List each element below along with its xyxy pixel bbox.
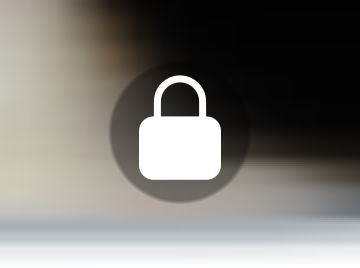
button[interactable]: Content hidden — [0, 60, 360, 207]
